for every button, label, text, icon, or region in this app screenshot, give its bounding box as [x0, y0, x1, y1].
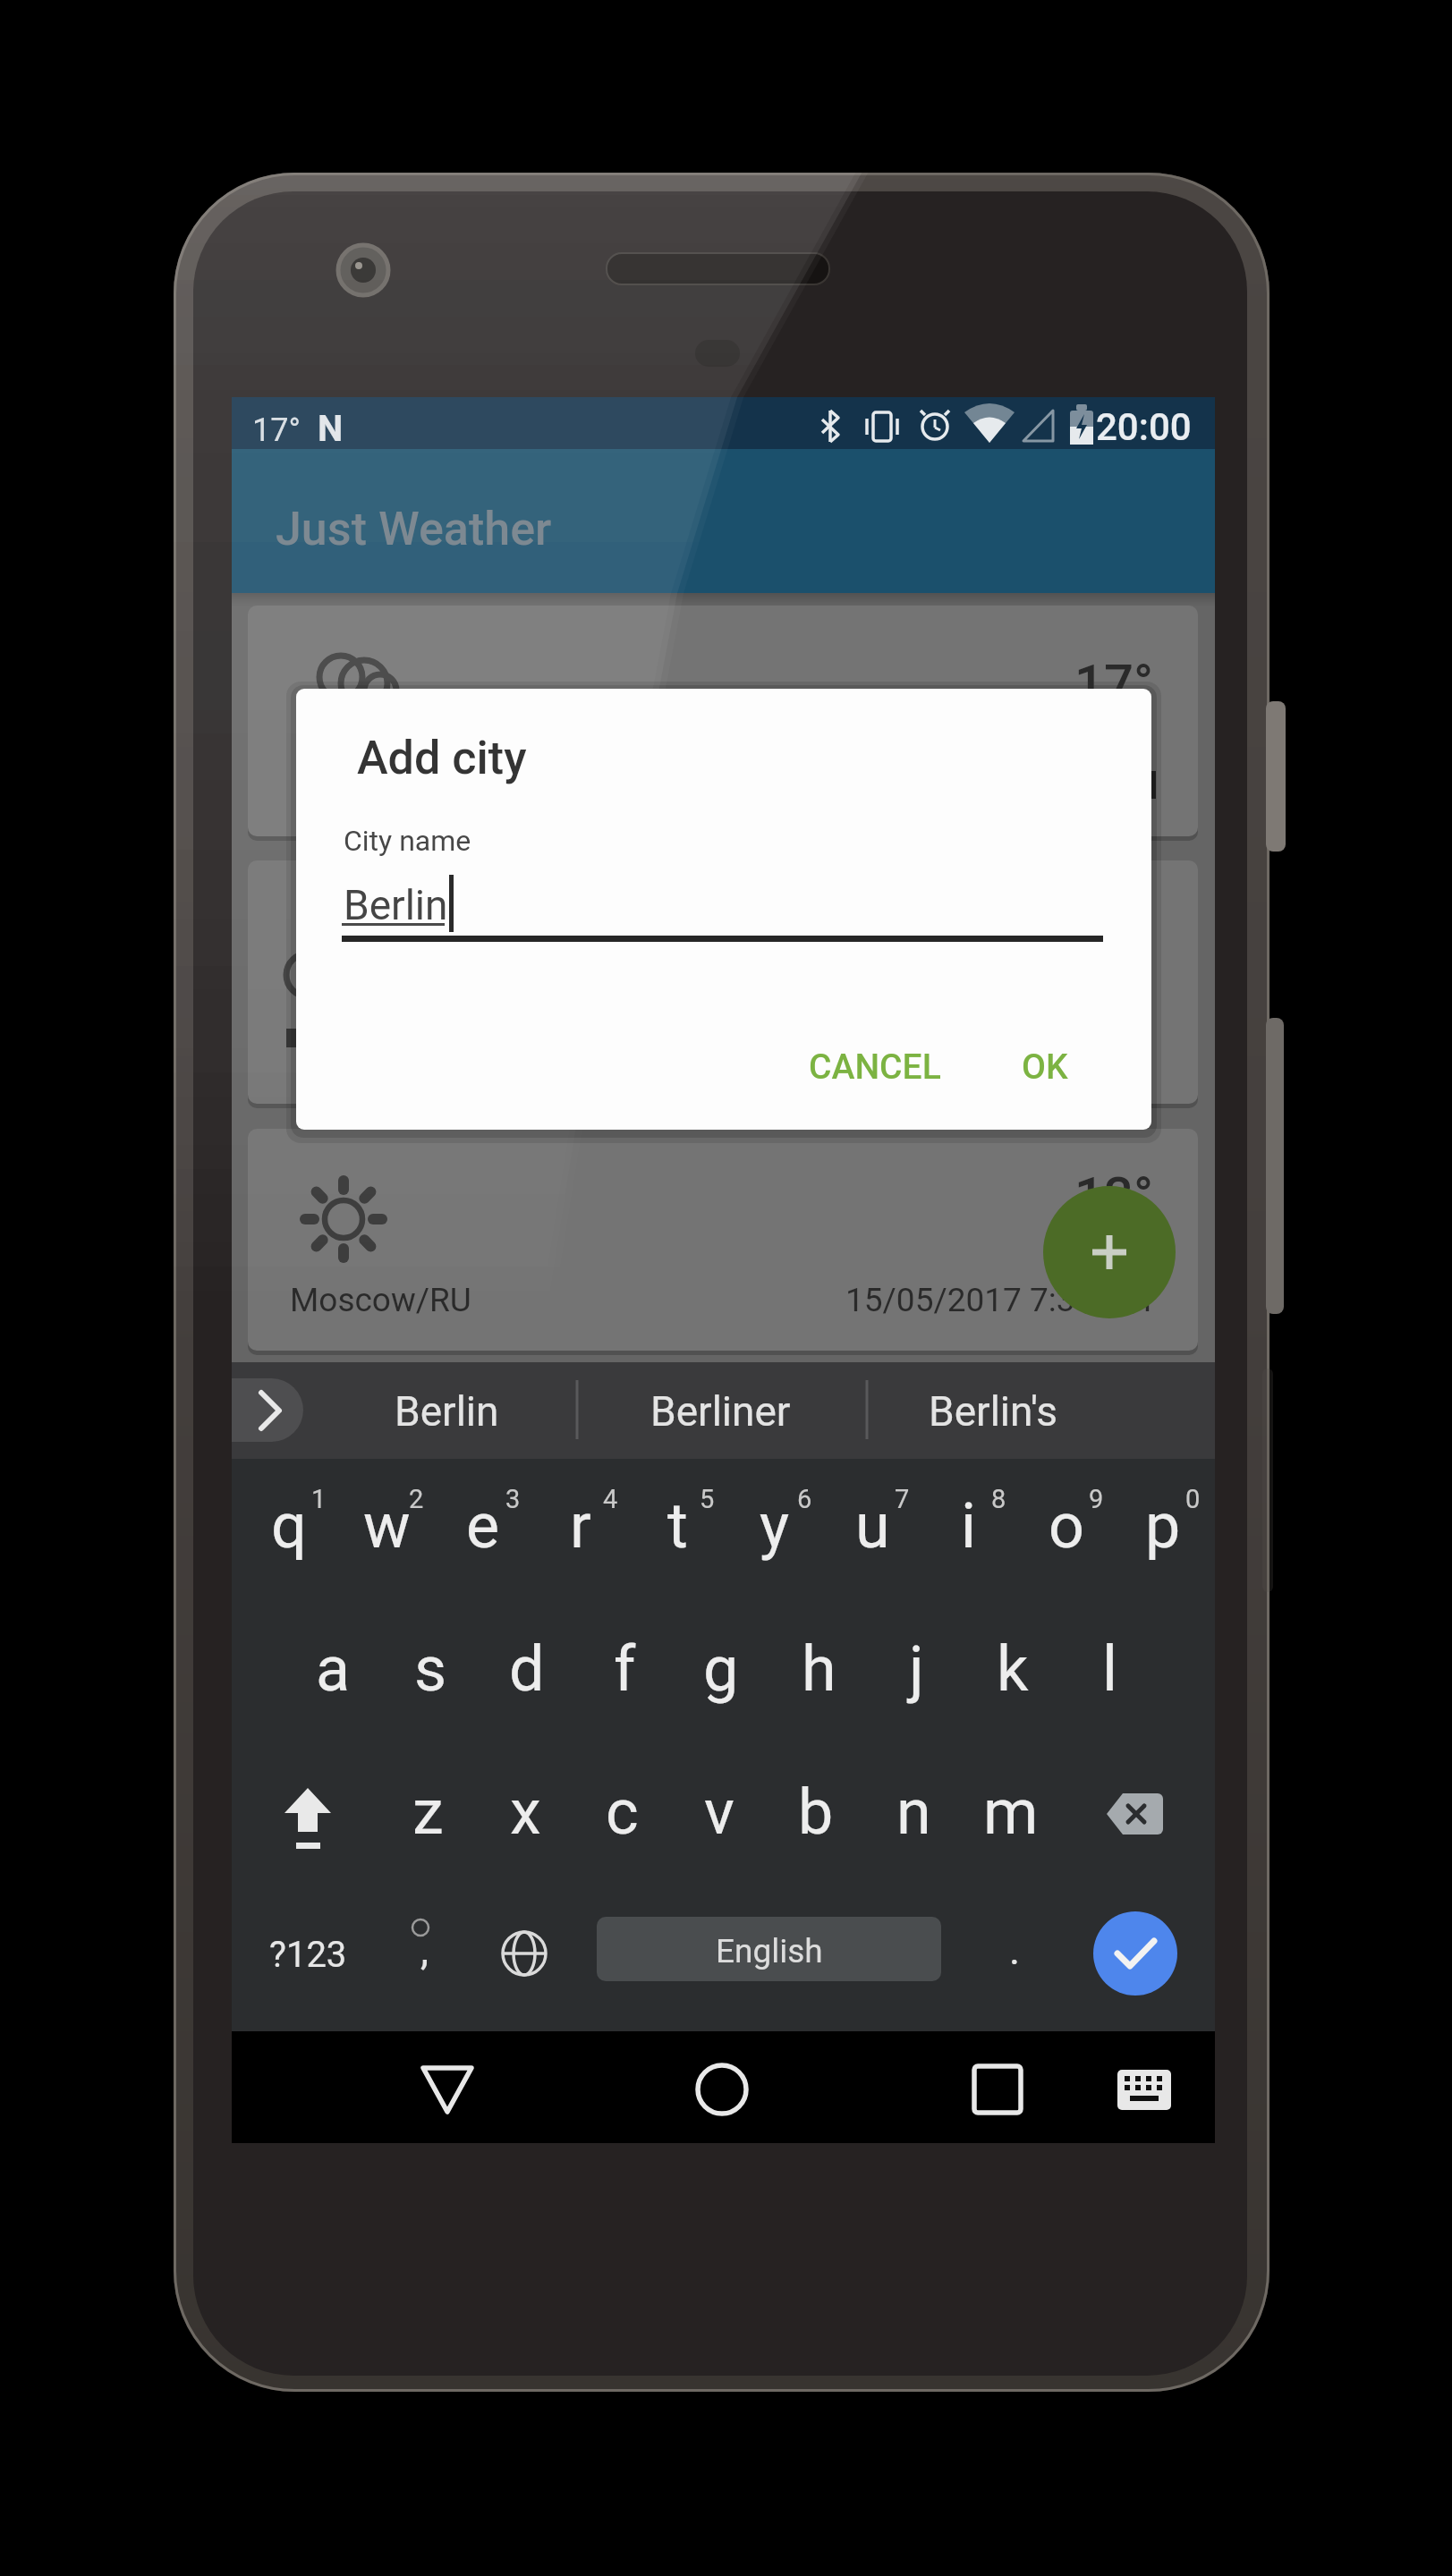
- staticText: 20:00: [1096, 405, 1192, 449]
- staticText: Add city: [357, 731, 527, 785]
- button[interactable]: [476, 1921, 573, 1986]
- staticText: Moscow/RU: [290, 1281, 471, 1319]
- button[interactable]: .: [1009, 1926, 1021, 1974]
- button[interactable]: [259, 1767, 356, 1865]
- staticText: Berlin: [344, 881, 448, 929]
- button[interactable]: x: [510, 1775, 541, 1849]
- button[interactable]: t: [667, 1489, 688, 1563]
- button[interactable]: s: [414, 1632, 447, 1706]
- button[interactable]: [948, 2057, 1047, 2122]
- button[interactable]: [398, 2057, 497, 2122]
- staticText: 4: [603, 1484, 618, 1514]
- staticText: 2: [409, 1484, 424, 1514]
- staticText: 7: [895, 1484, 910, 1514]
- button[interactable]: g: [703, 1632, 739, 1706]
- button[interactable]: l: [1102, 1632, 1118, 1706]
- button[interactable]: ,: [420, 1926, 429, 1974]
- button[interactable]: a: [316, 1632, 351, 1706]
- button[interactable]: [343, 859, 1102, 944]
- staticText: 0: [1185, 1484, 1201, 1514]
- button[interactable]: [1087, 1767, 1184, 1865]
- button[interactable]: n: [896, 1775, 931, 1849]
- button[interactable]: b: [798, 1775, 834, 1849]
- staticText: N: [318, 408, 344, 450]
- staticText: Just Weather: [276, 502, 552, 556]
- button[interactable]: q: [271, 1489, 307, 1563]
- staticText: 17°: [252, 411, 301, 449]
- staticText: 15/05/2017 7:31 PM: [845, 1281, 1152, 1319]
- button[interactable]: Berlin: [395, 1387, 499, 1436]
- button[interactable]: ?123: [269, 1934, 347, 1976]
- button[interactable]: d: [509, 1632, 545, 1706]
- staticText: 17°: [1074, 653, 1153, 714]
- button[interactable]: o: [1049, 1489, 1084, 1563]
- staticText: 5: [700, 1484, 715, 1514]
- button[interactable]: z: [412, 1775, 444, 1849]
- button[interactable]: [1093, 1911, 1177, 1996]
- staticText: City name: [344, 824, 471, 858]
- button[interactable]: CANCEL: [809, 1046, 941, 1088]
- button[interactable]: [1043, 1186, 1176, 1318]
- button[interactable]: j: [909, 1632, 924, 1706]
- button[interactable]: [199, 1378, 304, 1442]
- staticText: English: [716, 1932, 823, 1970]
- button[interactable]: y: [760, 1489, 790, 1563]
- button[interactable]: u: [855, 1489, 890, 1563]
- staticText: 6: [797, 1484, 812, 1514]
- staticText: 3: [505, 1484, 521, 1514]
- button[interactable]: Berlin's: [929, 1387, 1058, 1436]
- button[interactable]: v: [704, 1775, 734, 1849]
- button[interactable]: [1043, 1186, 1176, 1318]
- button[interactable]: m: [983, 1775, 1039, 1849]
- button[interactable]: c: [606, 1775, 639, 1849]
- button[interactable]: Berliner: [650, 1387, 791, 1436]
- button[interactable]: e: [466, 1489, 500, 1563]
- staticText: 8: [991, 1484, 1006, 1514]
- button[interactable]: OK: [1022, 1046, 1068, 1088]
- button[interactable]: f: [614, 1632, 636, 1706]
- button[interactable]: p: [1145, 1489, 1181, 1563]
- button[interactable]: h: [802, 1632, 836, 1706]
- button[interactable]: r: [570, 1489, 591, 1563]
- button[interactable]: [1109, 2057, 1181, 2122]
- button[interactable]: w: [363, 1489, 411, 1563]
- staticText: 13°: [1074, 1165, 1153, 1226]
- button[interactable]: [597, 1917, 941, 1981]
- staticText: 1: [311, 1484, 327, 1514]
- button[interactable]: i: [961, 1489, 977, 1563]
- staticText: 9: [1089, 1484, 1104, 1514]
- button[interactable]: k: [997, 1632, 1029, 1706]
- button[interactable]: [673, 2057, 771, 2122]
